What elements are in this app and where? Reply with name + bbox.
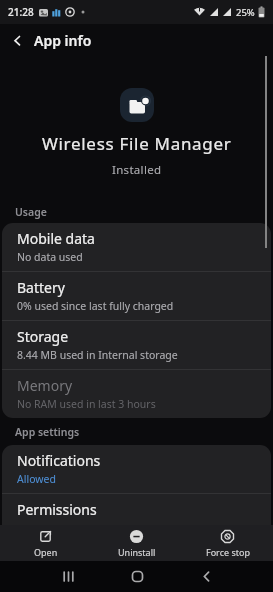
staticText: App settings: [15, 425, 80, 439]
button[interactable]: Permissions: [2, 494, 271, 525]
staticText: Wireless File Manager: [42, 132, 232, 155]
staticText: App info: [34, 31, 92, 50]
staticText: No data used: [17, 250, 83, 264]
staticText: 21:28: [8, 5, 34, 19]
staticText: Installed: [112, 162, 162, 178]
staticText: Uninstall: [118, 546, 156, 558]
staticText: Storage: [17, 327, 69, 346]
button[interactable]: Notifications: [2, 445, 271, 493]
staticText: Usage: [15, 205, 47, 219]
staticText: Notifications: [17, 451, 101, 470]
staticText: Memory: [17, 376, 73, 395]
button[interactable]: Storage: [2, 321, 271, 369]
staticText: No RAM used in last 3 hours: [17, 397, 156, 411]
button[interactable]: Uninstall: [91, 525, 182, 561]
staticText: Battery: [17, 278, 65, 297]
staticText: 8.44 MB used in Internal storage: [17, 348, 178, 362]
button[interactable]: Battery: [2, 272, 271, 320]
staticText: Allowed: [17, 472, 56, 486]
button[interactable]: [117, 561, 157, 592]
staticText: Permissions: [17, 500, 97, 519]
staticText: Force stop: [206, 546, 250, 558]
button[interactable]: Force stop: [182, 525, 273, 561]
button[interactable]: Memory: [2, 370, 271, 418]
staticText: 0% used since last fully charged: [17, 299, 174, 313]
staticText: Mobile data: [17, 229, 95, 248]
button[interactable]: Mobile data: [2, 223, 271, 271]
staticText: 25%: [236, 6, 255, 19]
staticText: Open: [34, 546, 58, 558]
button[interactable]: Open: [0, 525, 91, 561]
button[interactable]: [186, 561, 226, 592]
button[interactable]: [48, 561, 88, 592]
button[interactable]: [0, 24, 34, 56]
